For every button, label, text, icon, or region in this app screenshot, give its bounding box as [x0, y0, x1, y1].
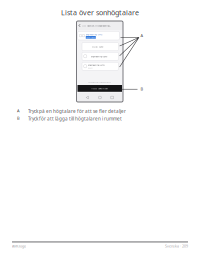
staticText: B	[141, 86, 144, 92]
staticText: Available	[86, 36, 95, 39]
staticText: ADD SPEAKER	[91, 87, 108, 90]
staticText: A	[17, 108, 20, 113]
staticText: Room	[88, 67, 93, 69]
staticText: B	[17, 115, 20, 121]
button[interactable]: Engineering MTG	[78, 31, 119, 40]
button[interactable]: HUB cafe	[82, 43, 118, 50]
staticText: Tryck på en högtalare för att se fler de…	[28, 108, 126, 114]
button[interactable]: Engineering Cafe	[82, 52, 118, 60]
staticText: Kan du inte hitta din högtalare?	[88, 81, 111, 83]
staticText: Tryck för att lägga till högtalaren i ru…	[28, 115, 122, 122]
staticText: AVR-logo	[12, 244, 26, 249]
staticText: Engineering Cafe	[91, 55, 107, 58]
staticText: Svenska · 209	[165, 244, 188, 249]
button[interactable]: Home	[98, 96, 101, 99]
button[interactable]: ADD SPEAKER	[77, 85, 122, 92]
button[interactable]: Recent apps	[111, 96, 113, 99]
staticText: A	[141, 33, 144, 38]
staticText: Lista över sonhögtalare	[61, 8, 139, 17]
button[interactable]: Back	[86, 96, 89, 99]
staticText: All devices in Engineering…	[82, 24, 111, 27]
staticText: Engineering MTG	[88, 63, 105, 66]
button[interactable]: Back	[78, 24, 81, 27]
staticText: Engineering MTG	[86, 33, 103, 36]
button[interactable]: Engineering MTG	[82, 62, 118, 70]
staticText: HUB cafe	[92, 45, 103, 48]
